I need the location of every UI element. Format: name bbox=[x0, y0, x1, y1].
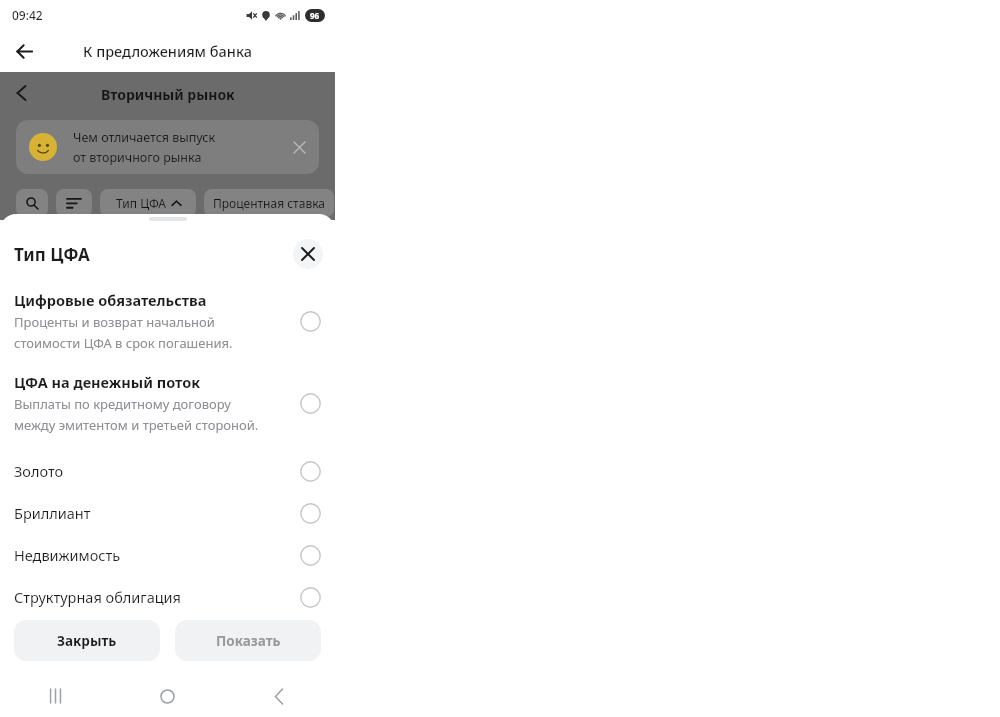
staticText: от вторичного рынка bbox=[73, 149, 202, 166]
button[interactable]: Цифровые обязательства bbox=[0, 288, 335, 354]
staticText: Структурная облигация bbox=[14, 587, 300, 607]
staticText: Выплаты по кредитному договору bbox=[14, 395, 231, 413]
staticText: Чем отличается выпуск bbox=[73, 129, 216, 146]
staticText: Цифровые обязательства bbox=[14, 290, 207, 310]
staticText: Тип ЦФА bbox=[116, 195, 166, 211]
staticText: 09:42 bbox=[12, 7, 43, 23]
button[interactable]: ЦФА на денежный поток bbox=[0, 370, 335, 436]
button[interactable]: Недвижимость bbox=[0, 534, 335, 576]
staticText: Бриллиант bbox=[14, 503, 300, 523]
staticText: Процентная ставка bbox=[213, 195, 325, 211]
staticText: Недвижимость bbox=[14, 545, 300, 565]
button[interactable]: Недавние bbox=[0, 675, 111, 717]
staticText: Вторичный рынок bbox=[101, 85, 235, 104]
staticText: К предложениям банка bbox=[83, 41, 252, 61]
button[interactable]: Золото bbox=[0, 450, 335, 492]
button[interactable]: Структурная облигация bbox=[0, 576, 335, 618]
staticText: Показать bbox=[216, 632, 281, 650]
button[interactable]: Закрыть bbox=[14, 620, 160, 661]
staticText: Проценты и возврат начальной bbox=[14, 313, 215, 331]
button[interactable]: Домой bbox=[111, 675, 223, 717]
staticText: 96 bbox=[310, 10, 320, 21]
button[interactable]: Назад bbox=[223, 675, 335, 717]
button[interactable]: Закрыть bbox=[293, 239, 323, 269]
staticText: стоимости ЦФА в срок погашения. bbox=[14, 334, 233, 352]
button[interactable]: Бриллиант bbox=[0, 492, 335, 534]
staticText: Тип ЦФА bbox=[14, 243, 293, 266]
staticText: ЦФА на денежный поток bbox=[14, 372, 201, 392]
staticText: Закрыть bbox=[57, 632, 117, 650]
staticText: Золото bbox=[14, 461, 300, 481]
button[interactable]: Назад bbox=[8, 35, 40, 67]
staticText: между эмитентом и третьей стороной. bbox=[14, 416, 259, 434]
button[interactable]: Показать bbox=[175, 620, 321, 661]
